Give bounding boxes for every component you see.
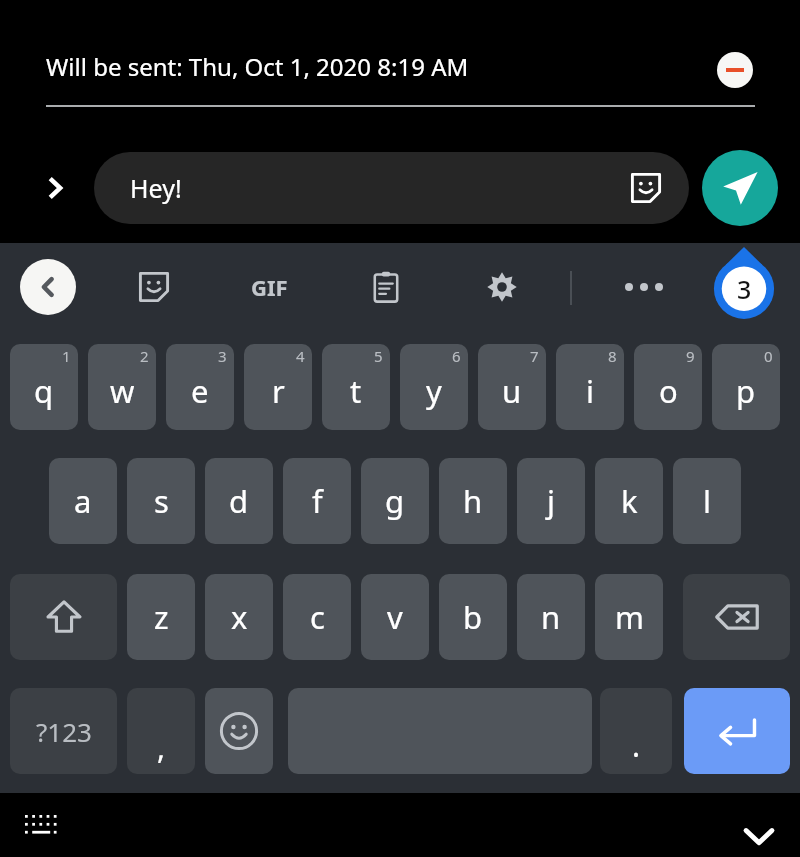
button[interactable]: r	[244, 344, 312, 430]
staticText: 4	[296, 346, 305, 366]
button[interactable]: t	[322, 344, 390, 430]
staticText: b	[463, 596, 483, 638]
staticText: w	[110, 370, 135, 412]
staticText: d	[229, 480, 249, 522]
button[interactable]: u	[478, 344, 546, 430]
staticText: a	[74, 480, 92, 522]
button[interactable]: Back	[20, 259, 76, 315]
button[interactable]: m	[595, 574, 663, 660]
staticText: v	[387, 596, 403, 638]
button[interactable]: i	[556, 344, 624, 430]
staticText: Will be sent: Thu, Oct 1, 2020 8:19 AM	[46, 50, 469, 83]
button[interactable]: .	[600, 688, 672, 774]
staticText: n	[541, 596, 561, 638]
button[interactable]: More options	[614, 259, 674, 315]
button[interactable]: s	[127, 458, 195, 544]
staticText: 2	[140, 346, 149, 366]
staticText: 3	[218, 346, 227, 366]
button[interactable]: o	[634, 344, 702, 430]
staticText: s	[154, 480, 169, 522]
staticText: h	[463, 480, 483, 522]
button[interactable]: h	[439, 458, 507, 544]
button[interactable]: Keyboard tool	[474, 259, 530, 315]
staticText: r	[272, 370, 285, 412]
button[interactable]: Hide keyboard	[735, 812, 783, 857]
button[interactable]: n	[517, 574, 585, 660]
staticText: 1	[62, 346, 71, 366]
button[interactable]: j	[517, 458, 585, 544]
staticText: Hey!	[130, 171, 182, 205]
button[interactable]: Shift	[10, 574, 117, 660]
button[interactable]: ,	[127, 688, 195, 774]
button[interactable]: e	[166, 344, 234, 430]
staticText: g	[385, 480, 405, 522]
button[interactable]: g	[361, 458, 429, 544]
staticText: x	[231, 596, 248, 638]
button[interactable]: v	[361, 574, 429, 660]
staticText: 5	[374, 346, 383, 366]
staticText: ?123	[36, 714, 92, 749]
button[interactable]: 3 notifications	[712, 247, 776, 321]
button[interactable]: y	[400, 344, 468, 430]
staticText: .	[632, 725, 641, 766]
staticText: e	[191, 370, 209, 412]
button[interactable]: ?123	[10, 688, 117, 774]
staticText: ,	[157, 727, 166, 768]
button[interactable]: a	[49, 458, 117, 544]
button[interactable]: q	[10, 344, 78, 430]
button[interactable]: z	[127, 574, 195, 660]
button[interactable]: Cancel scheduled message	[717, 52, 753, 88]
button[interactable]: Enter	[684, 688, 790, 774]
staticText: m	[615, 596, 644, 638]
button[interactable]: p	[712, 344, 780, 430]
button[interactable]: Keyboard tool	[358, 259, 414, 315]
button[interactable]: Keyboard tool	[126, 259, 182, 315]
button[interactable]: Switch keyboard	[18, 815, 68, 849]
staticText: o	[659, 370, 678, 412]
staticText: j	[547, 480, 555, 522]
staticText: GIF	[251, 272, 288, 302]
button[interactable]: d	[205, 458, 273, 544]
staticText: u	[502, 370, 522, 412]
button[interactable]: b	[439, 574, 507, 660]
staticText: 7	[530, 346, 539, 366]
button[interactable]: Hey!	[94, 152, 689, 224]
staticText: f	[312, 480, 323, 522]
staticText: k	[621, 480, 638, 522]
staticText: 9	[686, 346, 695, 366]
button[interactable]: f	[283, 458, 351, 544]
staticText: 8	[608, 346, 617, 366]
staticText: q	[34, 370, 54, 412]
staticText: p	[736, 370, 756, 412]
button[interactable]: k	[595, 458, 663, 544]
staticText: z	[154, 596, 169, 638]
staticText: 0	[764, 346, 773, 366]
staticText: c	[310, 596, 325, 638]
staticText: 3	[737, 272, 752, 306]
button[interactable]: x	[205, 574, 273, 660]
button[interactable]: w	[88, 344, 156, 430]
staticText: t	[350, 370, 362, 412]
button[interactable]: Emoji	[205, 688, 273, 774]
staticText: 6	[452, 346, 461, 366]
staticText: y	[426, 370, 442, 412]
button[interactable]: Expand	[36, 160, 76, 216]
staticText: i	[586, 370, 594, 412]
button[interactable]: Backspace	[683, 574, 790, 660]
button[interactable]: Send	[702, 150, 778, 226]
button[interactable]: GIF	[238, 259, 300, 315]
button[interactable]: Stickers	[627, 169, 665, 207]
button[interactable]: c	[283, 574, 351, 660]
button[interactable]: l	[673, 458, 741, 544]
staticText: l	[703, 480, 711, 522]
